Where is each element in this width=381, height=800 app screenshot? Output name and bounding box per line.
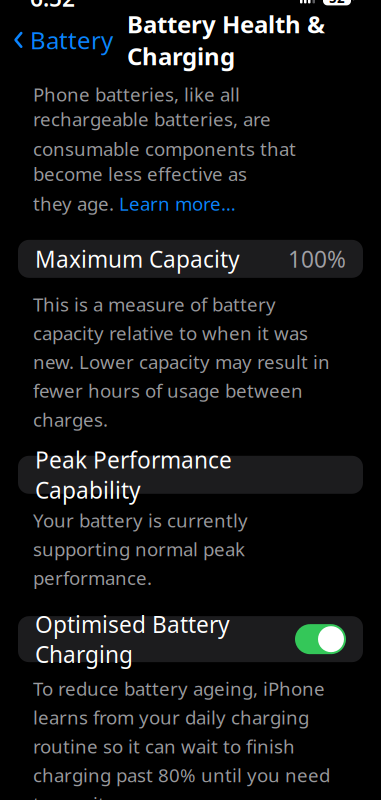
staticText: Learn more…: [119, 191, 236, 216]
button[interactable]: Battery: [12, 18, 113, 62]
staticText: 100%: [288, 244, 346, 274]
button[interactable]: Peak Performance Capability: [0, 456, 381, 494]
staticText: consumable components that become less e…: [33, 136, 296, 186]
staticText: Optimised Battery Charging: [35, 609, 230, 669]
staticText: Maximum Capacity: [35, 244, 240, 274]
staticText: To reduce battery ageing, iPhone learns …: [33, 676, 330, 800]
staticText: This is a measure of battery capacity re…: [33, 292, 330, 432]
staticText: 52: [329, 0, 345, 7]
button[interactable]: Learn more…: [119, 191, 236, 216]
button[interactable]: Optimised Battery Charging: [0, 616, 381, 662]
staticText: Peak Performance Capability: [35, 445, 232, 505]
staticText: Battery Health & Charging: [127, 8, 325, 72]
staticText: Battery: [30, 24, 113, 56]
staticText: they age.: [33, 191, 119, 216]
staticText: Phone batteries, like all rechargeable b…: [33, 82, 271, 131]
staticText: 6:52: [30, 0, 75, 13]
staticText: Your battery is currently supporting nor…: [33, 508, 248, 590]
button[interactable]: Maximum Capacity: [0, 240, 381, 278]
